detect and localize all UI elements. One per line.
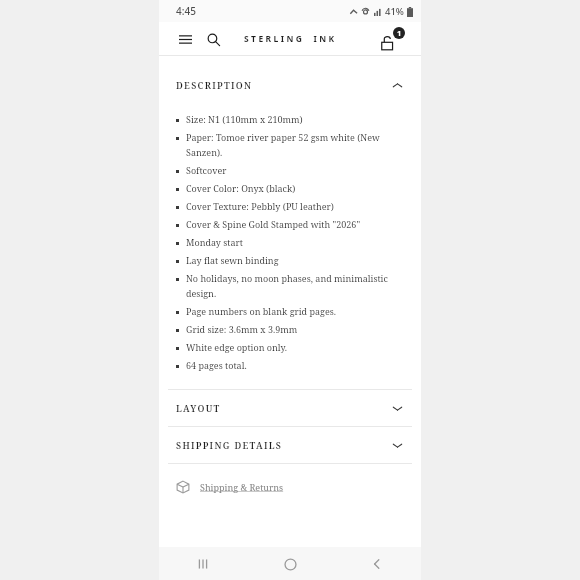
- staticText: Size: N1 (110mm x 210mm): [186, 113, 303, 125]
- staticText: Monday start: [186, 236, 243, 248]
- button[interactable]: Recents: [188, 549, 218, 579]
- staticText: DESCRIPTION: [176, 79, 253, 91]
- button[interactable]: Menu: [175, 29, 195, 49]
- staticText: STERLING INK: [244, 33, 337, 45]
- staticText: Paper: Tomoe river paper 52 gsm white (N…: [186, 131, 403, 158]
- staticText: Softcover: [186, 164, 227, 176]
- staticText: 64 pages total.: [186, 359, 247, 371]
- staticText: 41%: [385, 5, 404, 18]
- staticText: Lay flat sewn binding: [186, 254, 279, 266]
- staticText: White edge option only.: [186, 341, 288, 353]
- staticText: 1: [397, 28, 402, 38]
- button[interactable]: Cart, 1 item: [381, 27, 405, 51]
- staticText: No holidays, no moon phases, and minimal…: [186, 272, 403, 299]
- button[interactable]: SHIPPING DETAILS: [159, 427, 421, 463]
- staticText: Cover & Spine Gold Stamped with "2026": [186, 218, 361, 230]
- button[interactable]: DESCRIPTION: [159, 67, 421, 103]
- button[interactable]: LAYOUT: [159, 390, 421, 426]
- staticText: Page numbers on blank grid pages.: [186, 305, 337, 317]
- staticText: Cover Color: Onyx (black): [186, 182, 296, 194]
- staticText: SHIPPING DETAILS: [176, 439, 283, 451]
- button[interactable]: Back: [362, 549, 392, 579]
- staticText: Shipping & Returns: [200, 481, 284, 493]
- staticText: Grid size: 3.6mm x 3.9mm: [186, 323, 298, 335]
- staticText: Cover Texture: Pebbly (PU leather): [186, 200, 334, 212]
- button[interactable]: Search: [203, 29, 223, 49]
- button[interactable]: Shipping & Returns: [159, 464, 421, 509]
- staticText: LAYOUT: [176, 402, 221, 414]
- staticText: 4:45: [176, 4, 196, 18]
- button[interactable]: Home: [275, 549, 305, 579]
